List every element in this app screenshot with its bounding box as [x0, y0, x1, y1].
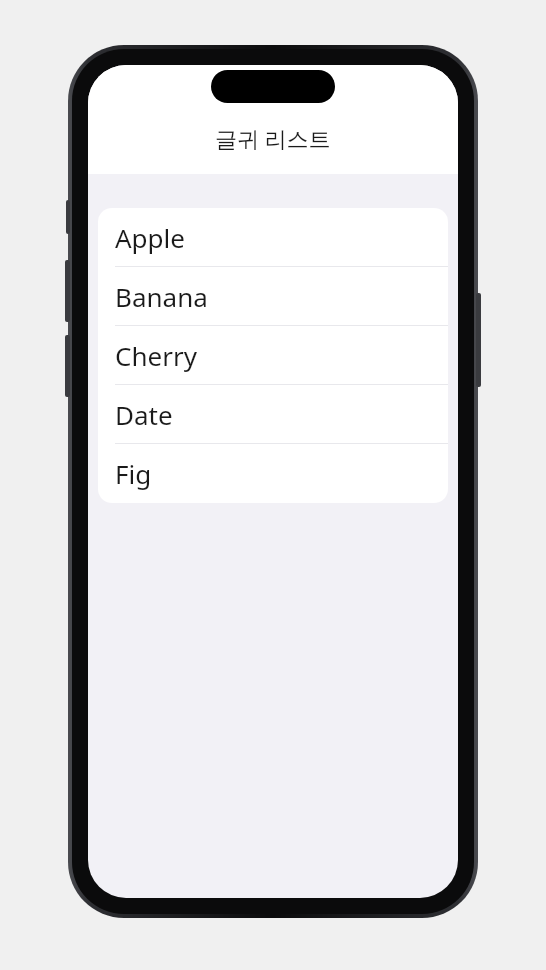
other: Volume down [65, 335, 70, 397]
other: Silent mode switch [66, 200, 70, 234]
staticText: Date [115, 397, 173, 432]
button[interactable]: Apple [98, 208, 448, 267]
button[interactable]: Banana [98, 267, 448, 326]
button[interactable]: Cherry [98, 326, 448, 385]
other: Power [476, 293, 481, 387]
staticText: Cherry [115, 338, 197, 373]
staticText: Apple [115, 220, 185, 255]
button[interactable]: Fig [98, 444, 448, 503]
staticText: 글귀 리스트 [88, 123, 458, 153]
staticText: Fig [115, 456, 152, 491]
button[interactable]: Date [98, 385, 448, 444]
staticText: Banana [115, 279, 208, 314]
other: Volume up [65, 260, 70, 322]
